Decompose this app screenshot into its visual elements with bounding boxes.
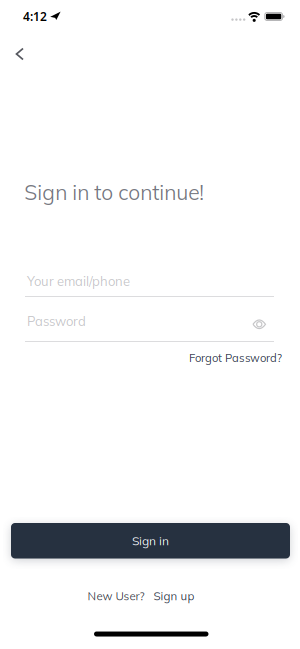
staticText: 4:12: [23, 8, 47, 24]
button[interactable]: Sign up: [153, 589, 194, 603]
button[interactable]: Sign in: [11, 523, 290, 558]
button[interactable]: Show password: [249, 313, 271, 335]
staticText: Forgot Password?: [189, 351, 282, 365]
staticText: Sign up: [153, 589, 194, 603]
staticText: Password: [27, 313, 86, 329]
staticText: Your email/phone: [27, 273, 130, 289]
staticText: New User?: [87, 589, 144, 603]
button[interactable]: Forgot Password?: [189, 351, 282, 365]
staticText: Sign in: [132, 533, 169, 548]
button[interactable]: Back: [8, 40, 36, 68]
staticText: Sign in to continue!: [24, 179, 204, 205]
